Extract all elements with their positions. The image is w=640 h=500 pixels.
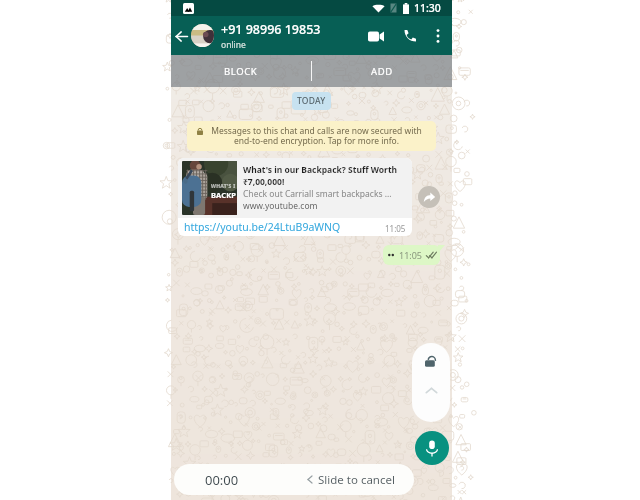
staticText: BACKP: [211, 190, 236, 200]
button[interactable]: Forward: [418, 186, 440, 208]
button[interactable]: TODAY: [297, 95, 326, 107]
staticText: ADD: [371, 65, 393, 78]
button[interactable]: Back: [171, 21, 191, 51]
button[interactable]: Lock recording: [412, 343, 450, 422]
button[interactable]: More options: [426, 18, 449, 54]
staticText: 00:00: [205, 471, 239, 489]
staticText: online: [221, 39, 246, 51]
staticText: 11:05: [399, 249, 423, 261]
button[interactable]: Video call: [364, 18, 394, 54]
staticText: Messages to this chat and calls are now …: [207, 125, 426, 147]
button[interactable]: WHAT'S I: [178, 158, 412, 236]
staticText: BLOCK: [224, 65, 258, 78]
staticText: www.youtube.com: [243, 200, 318, 212]
staticText: Check out Carriall smart backpacks ...: [243, 188, 392, 200]
button[interactable]: 00:00: [174, 464, 414, 495]
button[interactable]: Record voice message: [415, 431, 449, 465]
staticText: Slide to cancel: [318, 472, 395, 488]
staticText: https://youtu.be/24LtuB9aWNQ: [184, 220, 341, 234]
staticText: WHAT'S I: [211, 183, 236, 190]
button[interactable]: Contact photo: [191, 24, 214, 47]
button[interactable]: ADD: [312, 55, 452, 87]
button[interactable]: Messages to this chat and calls are now …: [197, 125, 426, 147]
staticText: TODAY: [297, 95, 326, 107]
staticText: 11:30: [414, 1, 441, 15]
button[interactable]: 11:05: [388, 249, 436, 261]
button[interactable]: Call: [394, 18, 426, 54]
staticText: +91 98996 19853: [221, 21, 321, 38]
staticText: 11:05: [385, 223, 406, 234]
button[interactable]: BLOCK: [171, 55, 311, 87]
staticText: What's in our Backpack? Stuff Worth ₹7,0…: [243, 164, 409, 188]
